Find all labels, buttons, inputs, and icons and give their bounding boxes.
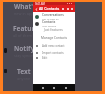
- staticText: Featur: [13, 24, 35, 33]
- staticText: Your people: [42, 24, 57, 27]
- button[interactable]: Nav: [64, 86, 68, 90]
- button[interactable]: Add new contact: [36, 43, 73, 48]
- staticText: All Contacts: [39, 6, 60, 11]
- staticText: Edit: [42, 56, 48, 60]
- button[interactable]: Conversations: [35, 13, 73, 20]
- staticText: Just features: [44, 28, 63, 32]
- staticText: new in app: [14, 11, 34, 16]
- staticText: Notify: [14, 44, 35, 53]
- button[interactable]: Contacts: [35, 20, 73, 27]
- button[interactable]: Edit: [36, 55, 73, 60]
- staticText: Import contacts: [42, 51, 64, 55]
- staticText: Contacts: [42, 20, 56, 24]
- button[interactable]: Action: [65, 6, 70, 11]
- staticText: Conversations: [42, 13, 64, 17]
- staticText: Text: [17, 67, 31, 76]
- button[interactable]: What's: [14, 2, 43, 16]
- button[interactable]: Nav: [52, 86, 56, 90]
- staticText: Manage Contacts: [41, 36, 68, 40]
- button[interactable]: Import contacts: [36, 50, 73, 55]
- staticText: 9:41 AM: [35, 2, 45, 5]
- staticText: all of them: [13, 33, 33, 38]
- staticText: anyone: [17, 76, 31, 81]
- button[interactable]: Action: [70, 6, 74, 11]
- button[interactable]: Nav: [41, 86, 45, 90]
- staticText: What's: [14, 2, 37, 11]
- button[interactable]: Action: [60, 6, 65, 11]
- button[interactable]: Featur: [13, 24, 42, 38]
- button[interactable]: Text: [17, 67, 46, 81]
- staticText: Tap to view all: [42, 17, 59, 20]
- staticText: stay synced: [14, 53, 35, 58]
- staticText: Add new contact: [42, 44, 65, 48]
- button[interactable]: Back: [34, 7, 38, 11]
- button[interactable]: Notify: [14, 44, 43, 58]
